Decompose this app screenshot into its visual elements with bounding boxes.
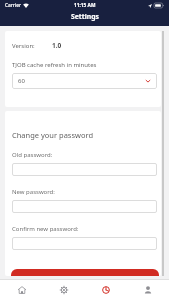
button[interactable]: Settings [85,280,127,300]
button[interactable]: Home [0,280,43,300]
button[interactable]: 60 [12,73,157,89]
button[interactable]: Log off [127,280,169,300]
staticText: TJOB cache refresh in minutes [12,61,97,69]
button[interactable] [11,269,159,276]
staticText: Version: [12,42,35,50]
staticText: New password: [12,188,55,196]
staticText: Carrier [5,2,21,9]
button[interactable]: Administration [43,280,85,300]
staticText: Confirm new password: [12,225,79,233]
staticText: 60 [18,77,25,85]
staticText: Change your password [12,130,94,140]
staticText: 11:15 AM [74,2,96,9]
staticText: Settings [71,12,99,21]
other: Expand [145,78,151,84]
staticText: Old password: [12,151,53,159]
staticText: 1.0 [52,41,62,50]
